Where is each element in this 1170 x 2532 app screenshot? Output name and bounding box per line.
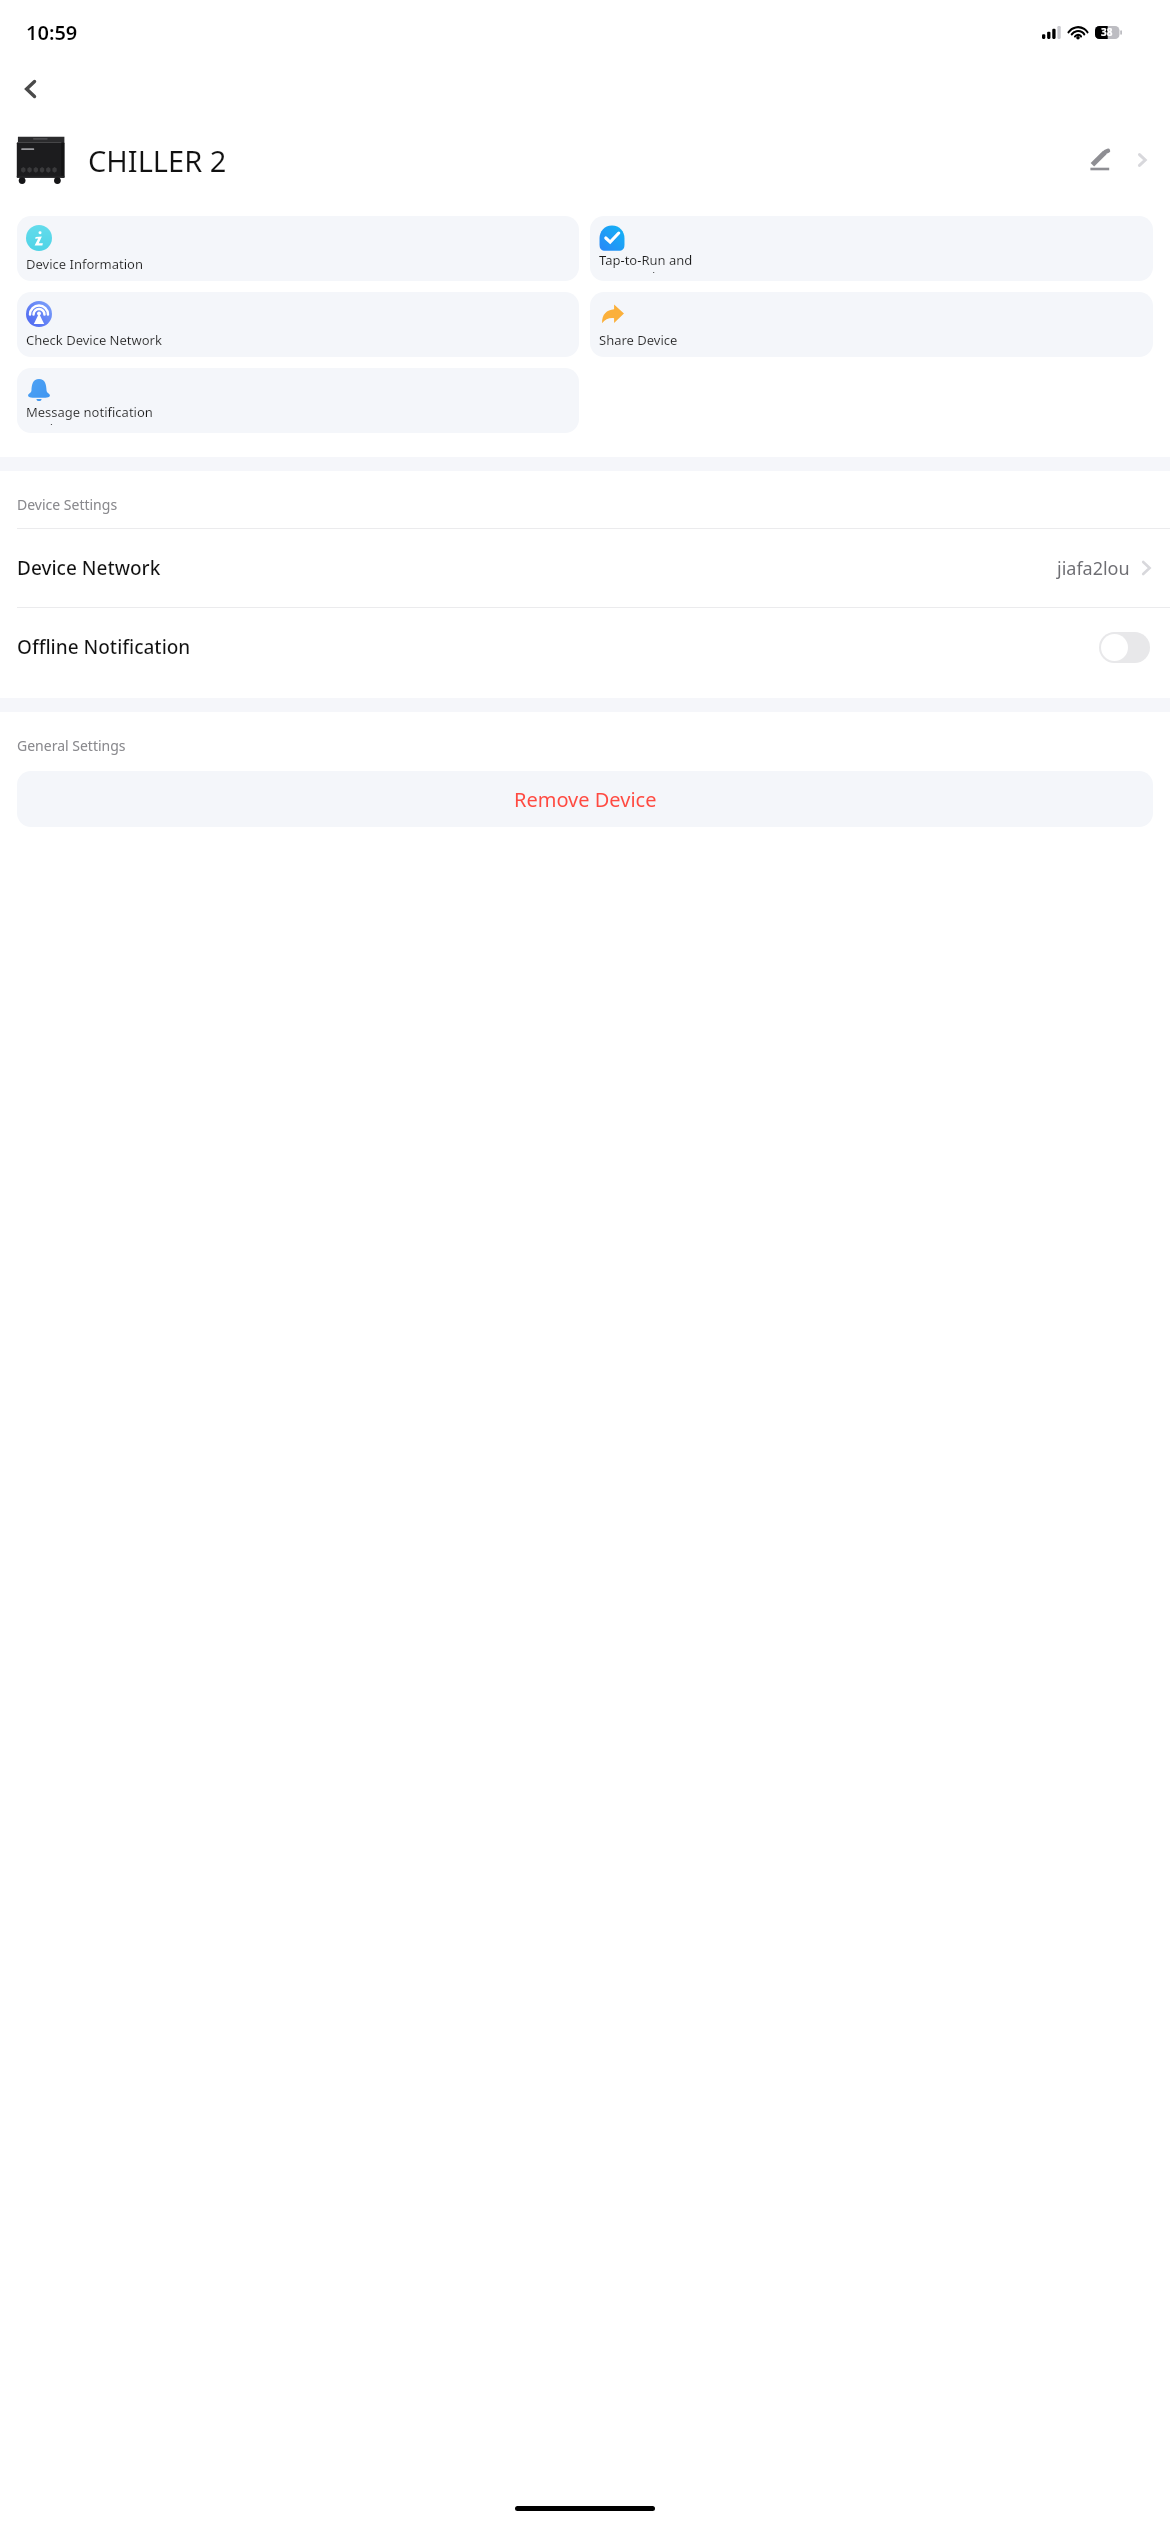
button[interactable]: Offline Notification toggle <box>1099 632 1150 663</box>
staticText: Device Information <box>26 255 144 273</box>
staticText: Message notification Settings <box>26 403 153 425</box>
staticText: Device Settings <box>17 495 118 514</box>
staticText: Share Device <box>599 331 678 349</box>
staticText: 38 <box>1101 25 1113 39</box>
staticText: Tap-to-Run and Automation <box>599 251 693 273</box>
staticText: 10:59 <box>26 19 78 46</box>
staticText: Check Device Network <box>26 331 162 349</box>
staticText: Offline Notification <box>17 634 1099 660</box>
staticText: CHILLER 2 <box>88 141 1078 180</box>
staticText: Device Network <box>17 555 1057 581</box>
button[interactable]: Share Device <box>590 292 1153 357</box>
staticText: General Settings <box>17 736 126 755</box>
button[interactable]: Device Information <box>17 216 579 281</box>
button[interactable]: Device details <box>1122 140 1162 180</box>
button[interactable]: Tap-to-Run and Automation <box>590 216 1153 281</box>
staticText: Remove Device <box>514 786 657 813</box>
button[interactable]: Check Device Network <box>17 292 579 357</box>
button[interactable]: Message notification Settings <box>17 368 579 433</box>
button[interactable]: CHILLER 2 <box>0 130 1170 190</box>
button[interactable]: Back <box>8 66 54 112</box>
button[interactable]: Rename device <box>1078 138 1122 182</box>
button[interactable]: Device Network <box>0 529 1170 607</box>
button[interactable]: Remove Device <box>17 771 1153 827</box>
staticText: jiafa2lou <box>1057 556 1130 581</box>
